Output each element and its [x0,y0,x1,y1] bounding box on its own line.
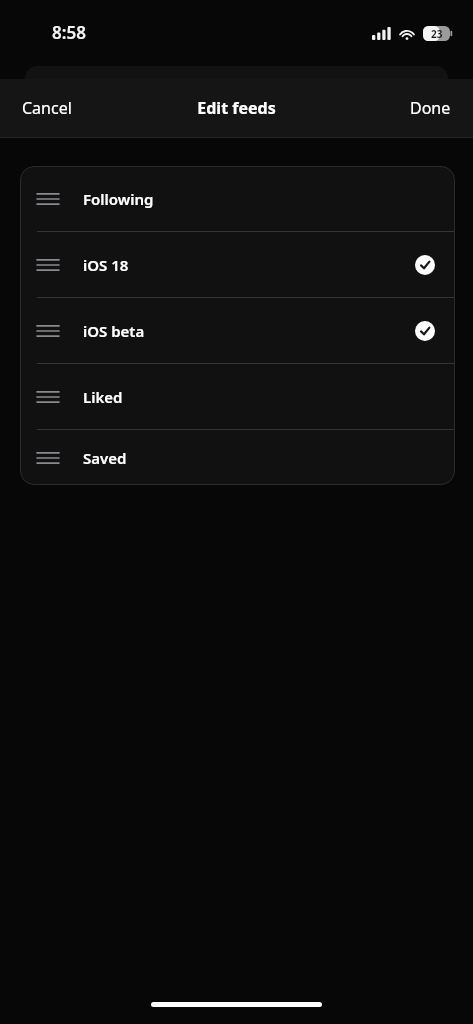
other: Reorder [37,323,59,339]
staticText: Following [83,189,154,209]
button[interactable]: Done [388,83,473,133]
button[interactable]: Reorder [20,166,455,231]
other: Reorder [37,257,59,273]
staticText: Cancel [22,97,72,119]
other: Selected [415,321,435,341]
other: Reorder [37,191,59,207]
staticText: Done [410,97,451,119]
staticText: Edit feeds [197,97,276,119]
staticText: Liked [83,387,123,407]
staticText: iOS 18 [83,255,129,275]
button[interactable]: Cancel [0,83,94,133]
staticText: iOS beta [83,321,145,341]
other: Reorder [37,450,59,466]
button[interactable]: Reorder [20,364,455,429]
button[interactable]: Reorder [20,430,455,485]
other: Selected [415,255,435,275]
staticText: 8:58 [52,21,86,44]
staticText: Saved [83,448,127,468]
staticText: 23 [431,27,443,41]
button[interactable]: Reorder [20,232,455,297]
other: Reorder [37,389,59,405]
button[interactable]: Reorder [20,298,455,363]
